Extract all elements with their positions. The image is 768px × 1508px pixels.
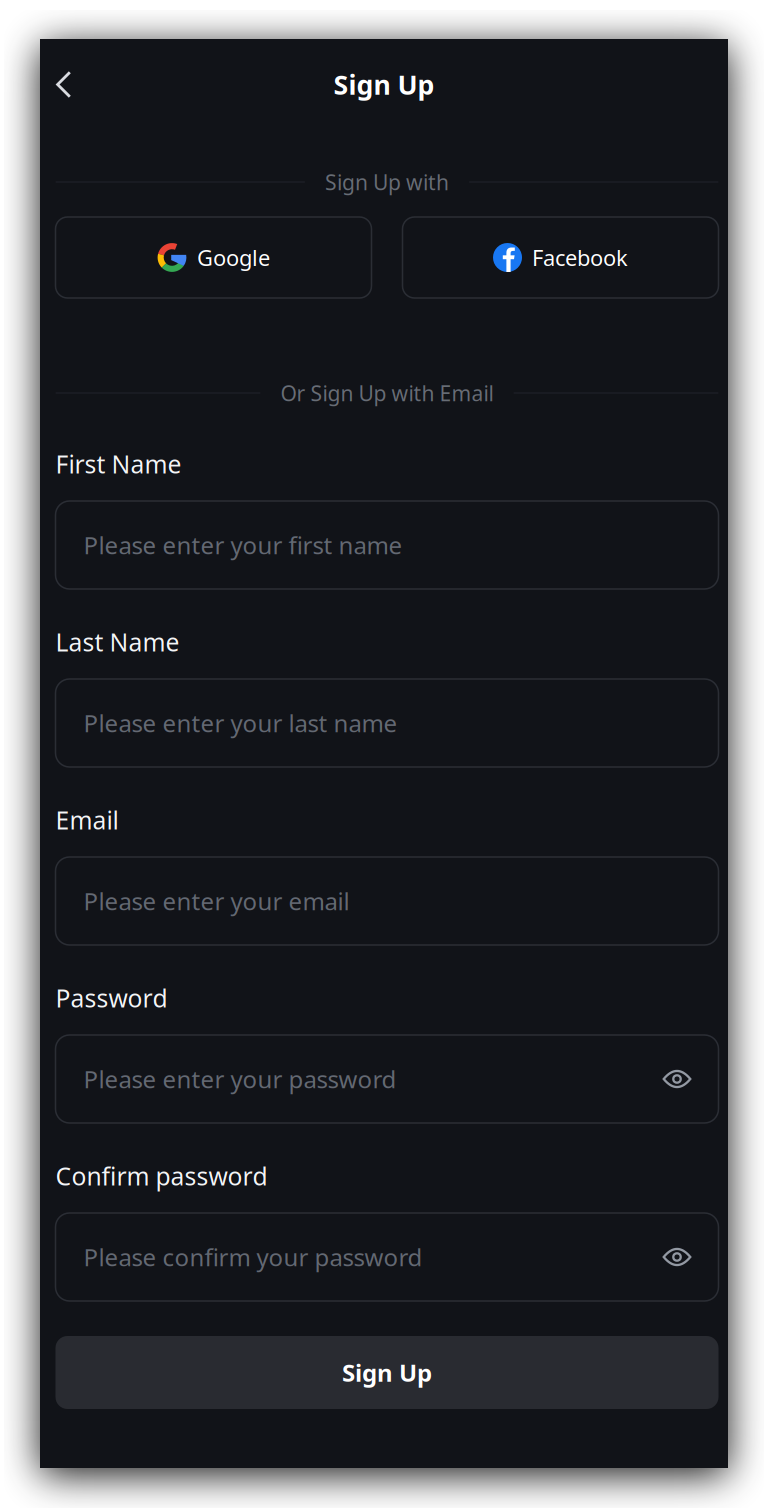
button[interactable]: Sign Up: [55, 1336, 718, 1409]
staticText: First Name: [55, 447, 181, 481]
staticText: Confirm password: [55, 1159, 267, 1193]
staticText: Google: [197, 243, 270, 272]
button[interactable]: Show password: [649, 1229, 705, 1285]
staticText: Please enter your password: [83, 1063, 396, 1095]
button[interactable]: Facebook: [402, 217, 718, 298]
button[interactable]: Please enter your password: [55, 1035, 718, 1123]
staticText: Email: [55, 803, 118, 837]
button[interactable]: Please enter your email: [55, 857, 718, 945]
staticText: Sign Up: [342, 1356, 432, 1389]
staticText: Password: [55, 981, 167, 1015]
staticText: Please enter your last name: [83, 707, 397, 739]
staticText: Facebook: [532, 243, 628, 272]
staticText: Please enter your first name: [83, 529, 402, 561]
staticText: Sign Up with: [325, 168, 449, 196]
button[interactable]: Please confirm your password: [55, 1213, 718, 1301]
button[interactable]: Google: [55, 217, 371, 298]
button[interactable]: Show password: [649, 1051, 705, 1107]
staticText: Last Name: [55, 625, 179, 659]
staticText: Sign Up: [333, 66, 434, 103]
staticText: Please confirm your password: [83, 1241, 422, 1273]
staticText: Please enter your email: [83, 885, 349, 917]
button[interactable]: Please enter your first name: [55, 501, 718, 589]
button[interactable]: Please enter your last name: [55, 679, 718, 767]
staticText: Or Sign Up with Email: [280, 379, 493, 407]
button[interactable]: Back: [40, 55, 102, 113]
